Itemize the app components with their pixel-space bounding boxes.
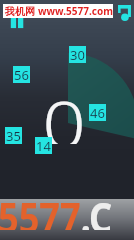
staticText: .CO: [81, 189, 116, 230]
button[interactable]: 14: [35, 137, 52, 154]
button[interactable]: 46: [89, 104, 106, 121]
staticText: 0: [42, 78, 87, 144]
staticText: 56: [14, 66, 29, 83]
button[interactable]: 56: [13, 66, 30, 83]
staticText: 我机网: [5, 5, 35, 18]
staticText: 46: [90, 104, 105, 121]
staticText: 35: [6, 127, 21, 144]
staticText: 5577: [0, 189, 81, 230]
button[interactable]: 35: [5, 127, 22, 144]
staticText: www.5577.com: [38, 4, 113, 18]
staticText: 30: [70, 46, 85, 63]
button[interactable]: 30: [69, 46, 86, 63]
staticText: 14: [36, 137, 51, 154]
button[interactable]: Sound: [116, 3, 133, 23]
button[interactable]: Pause: [10, 14, 26, 30]
